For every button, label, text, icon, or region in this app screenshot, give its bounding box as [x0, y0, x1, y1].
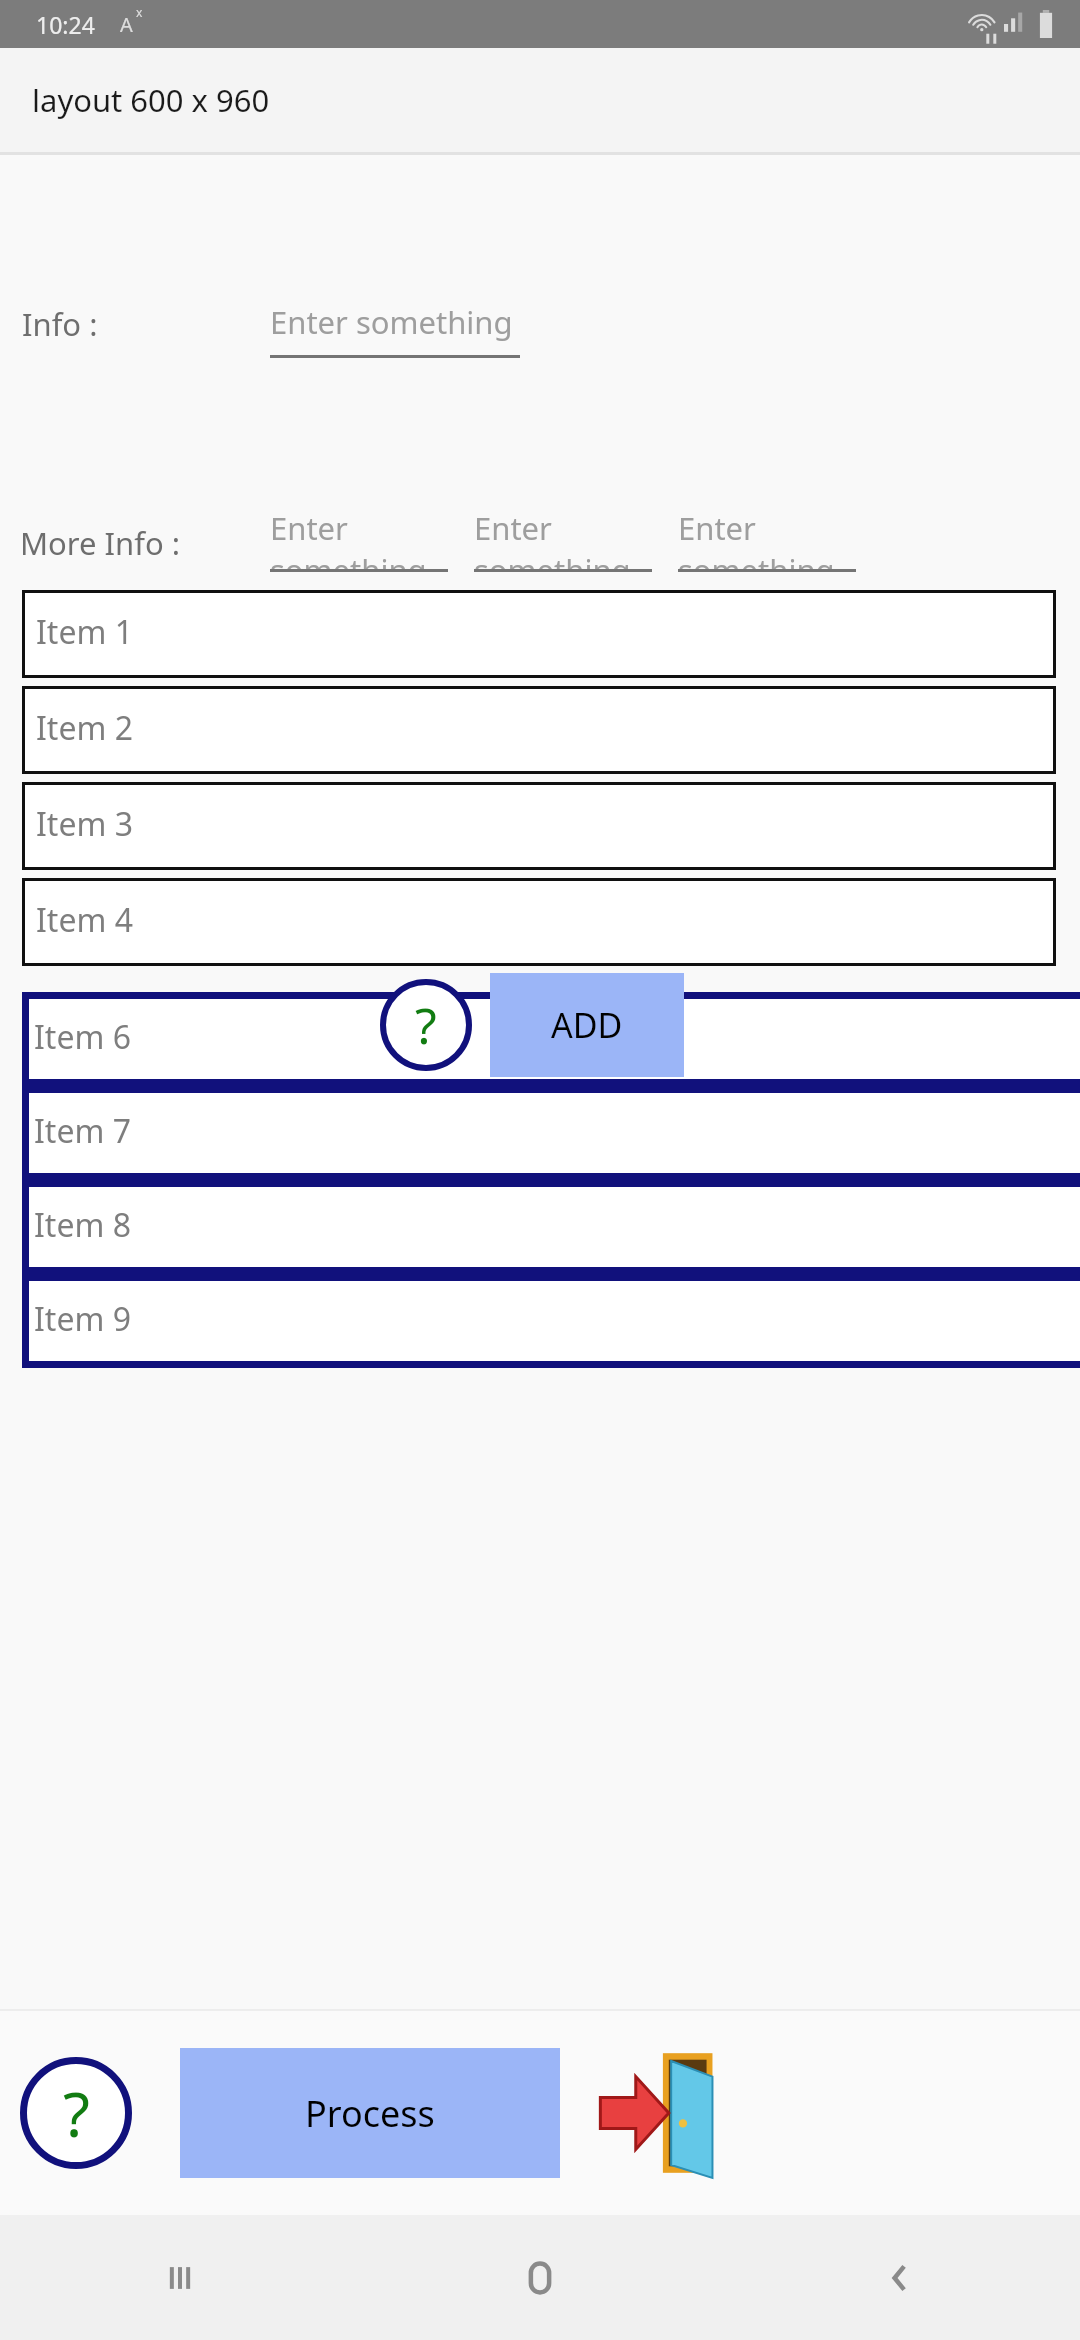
- staticText: Item 6: [34, 1015, 131, 1059]
- staticText: Enter something: [678, 507, 835, 569]
- staticText: layout 600 x 960: [32, 79, 270, 121]
- button[interactable]: Recents: [0, 2215, 360, 2340]
- staticText: Item 7: [34, 1109, 131, 1153]
- button[interactable]: Item 3: [22, 782, 1056, 870]
- button[interactable]: Item 6: [22, 992, 1080, 1086]
- button[interactable]: Item 4: [22, 878, 1056, 966]
- staticText: Item 8: [34, 1203, 131, 1247]
- staticText: Item 3: [36, 802, 133, 846]
- button[interactable]: Home: [360, 2215, 720, 2340]
- staticText: Item 1: [36, 610, 133, 654]
- button[interactable]: Exit: [598, 2048, 716, 2178]
- staticText: Info :: [22, 303, 98, 345]
- staticText: ?: [63, 2071, 90, 2155]
- button[interactable]: Item 8: [22, 1180, 1080, 1274]
- staticText: ?: [415, 991, 437, 1059]
- staticText: Item 9: [34, 1297, 131, 1341]
- button[interactable]: Item 1: [22, 590, 1056, 678]
- button[interactable]: Help: [380, 979, 472, 1071]
- staticText: Process: [305, 2089, 435, 2138]
- staticText: Item 4: [36, 898, 133, 942]
- staticText: A: [120, 11, 133, 38]
- staticText: Enter something: [474, 507, 631, 569]
- button[interactable]: Help: [20, 2057, 132, 2169]
- button[interactable]: ADD: [490, 973, 684, 1077]
- button[interactable]: Item 9: [22, 1274, 1080, 1368]
- staticText: x: [136, 4, 143, 20]
- button[interactable]: Item 7: [22, 1086, 1080, 1180]
- staticText: More Info :: [20, 522, 181, 564]
- button[interactable]: Process: [180, 2048, 560, 2178]
- staticText: Item 2: [36, 706, 133, 750]
- button[interactable]: Back: [720, 2215, 1080, 2340]
- staticText: ADD: [551, 1002, 623, 1048]
- button[interactable]: Item 2: [22, 686, 1056, 774]
- staticText: Enter something: [270, 507, 427, 569]
- staticText: Enter something: [270, 301, 513, 343]
- staticText: 10:24: [36, 9, 95, 40]
